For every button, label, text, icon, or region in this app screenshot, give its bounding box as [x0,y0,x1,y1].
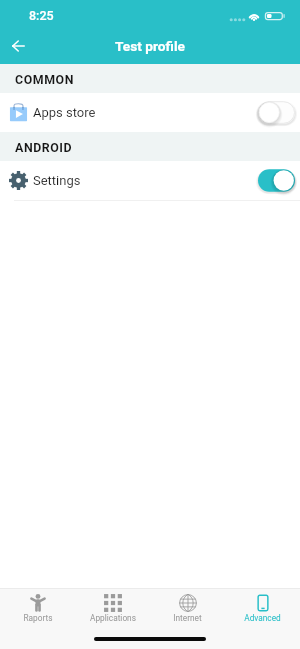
button[interactable]: Applications [75,589,150,628]
staticText: Internet [173,613,202,623]
button[interactable]: Internet [150,589,225,628]
staticText: Settings [33,173,81,188]
staticText: Apps store [33,105,96,120]
staticText: Test profile [115,38,185,54]
button[interactable]: Raports [0,589,75,628]
staticText: Advanced [244,613,281,623]
button[interactable]: Apps store [0,93,300,132]
button[interactable]: Advanced [225,589,300,628]
staticText: ANDROID [15,140,73,155]
staticText: Raports [23,613,53,623]
staticText: COMMON [15,72,74,87]
button[interactable]: Back [0,28,36,64]
button[interactable]: Settings [0,161,300,200]
staticText: Applications [90,613,136,623]
staticText: 8:25 [29,8,54,23]
